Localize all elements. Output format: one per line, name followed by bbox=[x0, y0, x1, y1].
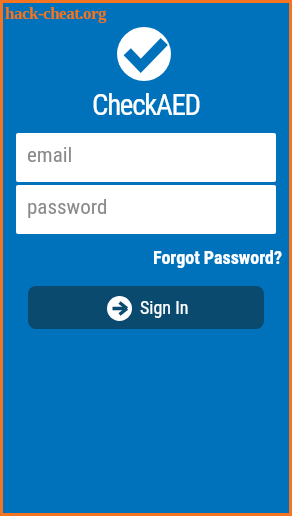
staticText: password bbox=[27, 195, 108, 220]
staticText: Sign In bbox=[140, 297, 189, 318]
button[interactable]: email bbox=[16, 133, 276, 182]
staticText: email bbox=[27, 143, 73, 168]
button[interactable]: Forgot Password? bbox=[153, 247, 282, 268]
staticText: hack-cheat.org bbox=[5, 4, 107, 23]
button[interactable]: password bbox=[16, 185, 276, 234]
staticText: CheckAED bbox=[92, 88, 200, 122]
button[interactable]: Sign In bbox=[28, 286, 264, 329]
